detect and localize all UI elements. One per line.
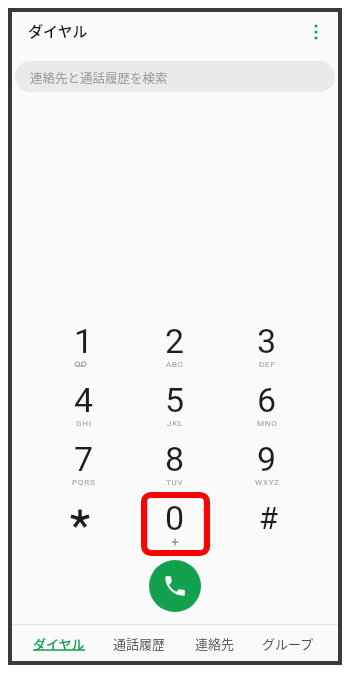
- staticText: ダイヤル: [28, 20, 88, 42]
- staticText: 3: [257, 321, 277, 361]
- staticText: MNO: [257, 419, 278, 428]
- button[interactable]: #: [229, 496, 309, 540]
- button[interactable]: 9: [227, 437, 307, 481]
- button[interactable]: [306, 20, 328, 46]
- staticText: WXYZ: [255, 478, 280, 487]
- staticText: 7: [74, 439, 94, 479]
- staticText: ABC: [166, 360, 184, 369]
- staticText: 4: [74, 380, 94, 420]
- button[interactable]: 1: [44, 319, 124, 363]
- staticText: 0: [165, 498, 185, 538]
- staticText: ダイヤル: [33, 634, 85, 653]
- staticText: PQRS: [72, 478, 96, 487]
- staticText: JKL: [167, 419, 184, 428]
- button[interactable]: 6: [227, 378, 307, 422]
- button[interactable]: 4: [44, 378, 124, 422]
- button[interactable]: 連絡先と通話履歴を検索: [15, 61, 335, 92]
- button[interactable]: 連絡先: [181, 628, 249, 658]
- staticText: 5: [165, 380, 185, 420]
- button[interactable]: 8: [135, 437, 215, 481]
- staticText: #: [259, 500, 279, 536]
- staticText: 2: [165, 321, 185, 361]
- staticText: 通話履歴: [113, 634, 166, 653]
- button[interactable]: [44, 496, 124, 540]
- staticText: 6: [257, 380, 277, 420]
- button[interactable]: [149, 560, 201, 612]
- staticText: 8: [165, 439, 185, 479]
- button[interactable]: 通話履歴: [105, 628, 173, 658]
- staticText: GHI: [76, 419, 92, 428]
- staticText: 連絡先: [195, 634, 235, 653]
- staticText: DEF: [259, 360, 276, 369]
- button[interactable]: 2: [135, 319, 215, 363]
- button[interactable]: ダイヤル: [25, 628, 93, 658]
- staticText: 連絡先と通話履歴を検索: [30, 68, 168, 86]
- button[interactable]: 7: [44, 437, 124, 481]
- staticText: TUV: [166, 478, 184, 487]
- button[interactable]: グループ: [254, 628, 322, 658]
- staticText: 9: [257, 439, 277, 479]
- button[interactable]: 0: [135, 496, 215, 540]
- staticText: グループ: [262, 634, 314, 653]
- button[interactable]: 5: [135, 378, 215, 422]
- staticText: 1: [74, 321, 94, 361]
- button[interactable]: 3: [227, 319, 307, 363]
